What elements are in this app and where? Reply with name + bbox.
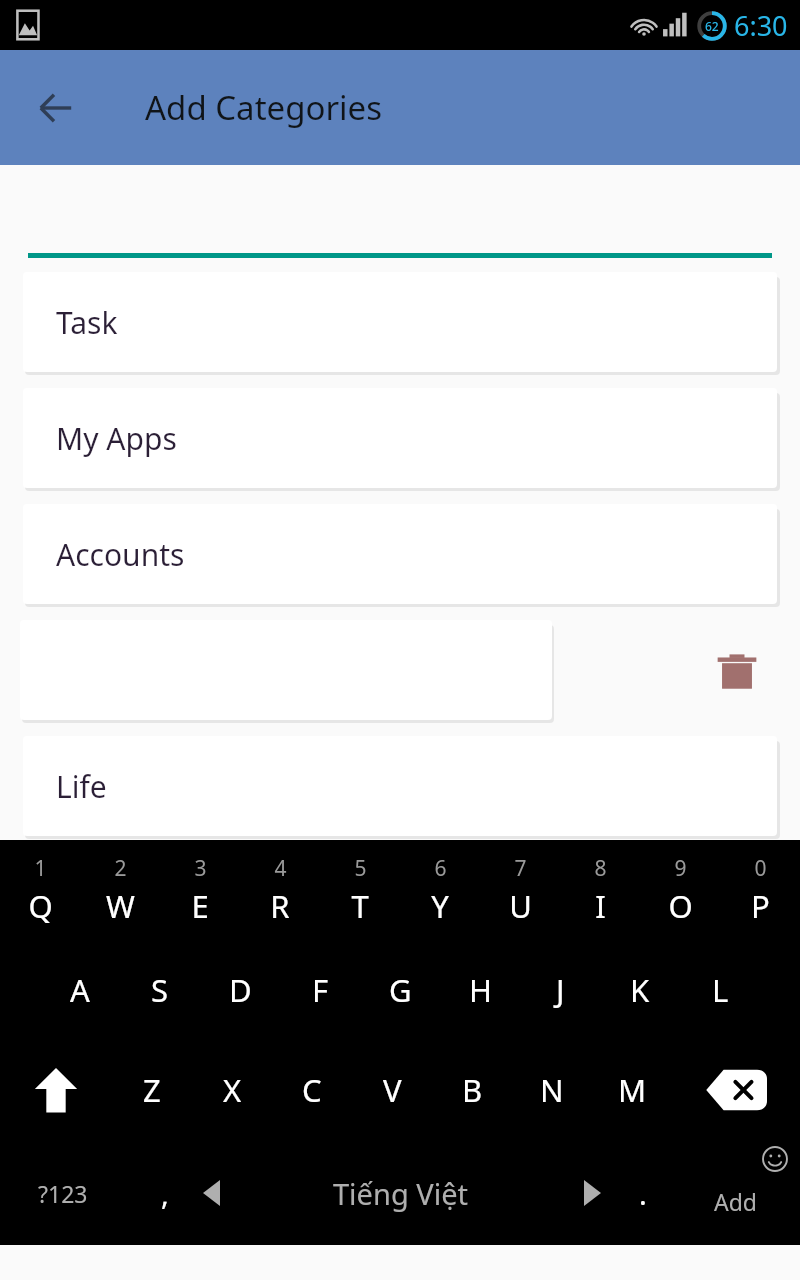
button[interactable]: 0 <box>720 840 800 940</box>
button[interactable]: S <box>120 940 200 1040</box>
staticText: R <box>270 885 290 927</box>
button[interactable]: Delete <box>706 641 768 703</box>
staticText: A <box>70 969 90 1011</box>
button[interactable]: Back <box>22 74 90 142</box>
staticText: 6 <box>434 854 447 883</box>
staticText: J <box>556 969 565 1011</box>
button[interactable]: Accounts <box>23 504 777 604</box>
button[interactable]: V <box>352 1040 432 1140</box>
button[interactable]: My Apps <box>23 388 777 488</box>
staticText: S <box>151 969 169 1011</box>
staticText: N <box>540 1069 564 1111</box>
staticText: H <box>469 969 492 1011</box>
button[interactable]: N <box>512 1040 592 1140</box>
button[interactable]: H <box>440 940 520 1040</box>
button[interactable]: 9 <box>640 840 720 940</box>
button[interactable]: J <box>520 940 600 1040</box>
button[interactable]: 3 <box>160 840 240 940</box>
button[interactable]: Life <box>23 736 777 836</box>
button[interactable]: Add <box>680 1140 800 1245</box>
staticText: B <box>462 1069 483 1111</box>
staticText: ?123 <box>38 1178 88 1209</box>
staticText: Add Categories <box>145 85 382 130</box>
staticText: 62 <box>705 18 719 34</box>
staticText: , <box>161 1174 169 1213</box>
staticText: Z <box>143 1069 161 1111</box>
button[interactable]: Backspace <box>672 1040 800 1140</box>
staticText: 7 <box>514 854 527 883</box>
button[interactable]: , <box>135 1153 195 1233</box>
staticText: Q <box>28 885 53 927</box>
staticText: Accounts <box>56 534 185 575</box>
staticText: 9 <box>674 854 687 883</box>
button[interactable]: . <box>615 1153 671 1233</box>
staticText: 3 <box>194 854 207 883</box>
button[interactable]: 6 <box>400 840 480 940</box>
button[interactable]: L <box>680 940 760 1040</box>
staticText: . <box>639 1174 647 1213</box>
staticText: 6:30 <box>734 7 788 44</box>
button[interactable]: C <box>272 1040 352 1140</box>
staticText: O <box>668 885 693 927</box>
staticText: I <box>595 885 606 927</box>
staticText: X <box>223 1069 242 1111</box>
staticText: U <box>509 885 532 927</box>
staticText: 0 <box>754 854 767 883</box>
staticText: D <box>229 969 252 1011</box>
button[interactable]: Z <box>112 1040 192 1140</box>
staticText: E <box>191 885 209 927</box>
button[interactable]: D <box>200 940 280 1040</box>
staticText: W <box>106 885 135 927</box>
button[interactable]: 2 <box>80 840 160 940</box>
button[interactable]: A <box>40 940 120 1040</box>
button[interactable]: Move cursor left <box>183 1153 239 1233</box>
button[interactable]: 4 <box>240 840 320 940</box>
staticText: T <box>351 885 369 927</box>
button[interactable]: Task <box>23 272 777 372</box>
button[interactable]: G <box>360 940 440 1040</box>
staticText: V <box>383 1069 402 1111</box>
staticText: 4 <box>274 854 287 883</box>
staticText: 2 <box>114 854 127 883</box>
staticText: L <box>712 969 729 1011</box>
staticText: F <box>312 969 329 1011</box>
button[interactable]: Shift <box>0 1040 112 1140</box>
button[interactable]: ?123 <box>18 1153 108 1233</box>
button[interactable]: B <box>432 1040 512 1140</box>
button[interactable]: 1 <box>0 840 80 940</box>
button[interactable]: F <box>280 940 360 1040</box>
staticText: M <box>618 1069 647 1111</box>
staticText: C <box>302 1069 322 1111</box>
button[interactable]: 7 <box>480 840 560 940</box>
staticText: 1 <box>34 854 47 883</box>
button[interactable]: Tiếng Việt <box>250 1150 550 1236</box>
staticText: G <box>389 969 412 1011</box>
staticText: Task <box>56 302 118 343</box>
button[interactable]: 8 <box>560 840 640 940</box>
staticText: Y <box>431 885 449 927</box>
button[interactable]: X <box>192 1040 272 1140</box>
button[interactable]: 5 <box>320 840 400 940</box>
staticText: 8 <box>594 854 607 883</box>
staticText: Tiếng Việt <box>333 1174 468 1213</box>
button[interactable]: M <box>592 1040 672 1140</box>
staticText: K <box>630 969 650 1011</box>
staticText: My Apps <box>56 418 177 459</box>
staticText: 5 <box>354 854 367 883</box>
staticText: Life <box>56 766 107 807</box>
staticText: P <box>751 885 770 927</box>
button[interactable]: Move cursor right <box>565 1153 621 1233</box>
staticText: Add <box>714 1186 757 1217</box>
button[interactable]: K <box>600 940 680 1040</box>
